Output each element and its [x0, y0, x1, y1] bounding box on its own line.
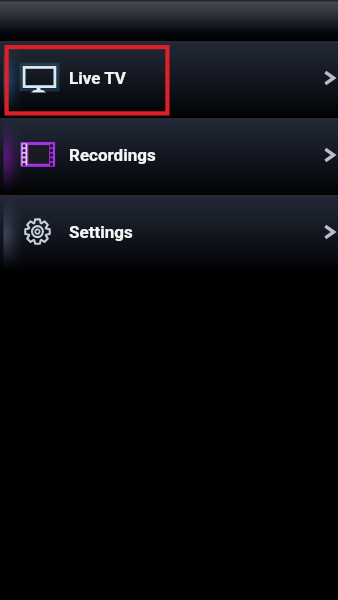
- button[interactable]: Recordings: [0, 118, 338, 195]
- button[interactable]: Live TV: [0, 41, 338, 118]
- staticText: Recordings: [69, 145, 156, 165]
- button[interactable]: Settings: [0, 195, 338, 272]
- staticText: Live TV: [69, 68, 126, 88]
- staticText: Settings: [69, 222, 133, 242]
